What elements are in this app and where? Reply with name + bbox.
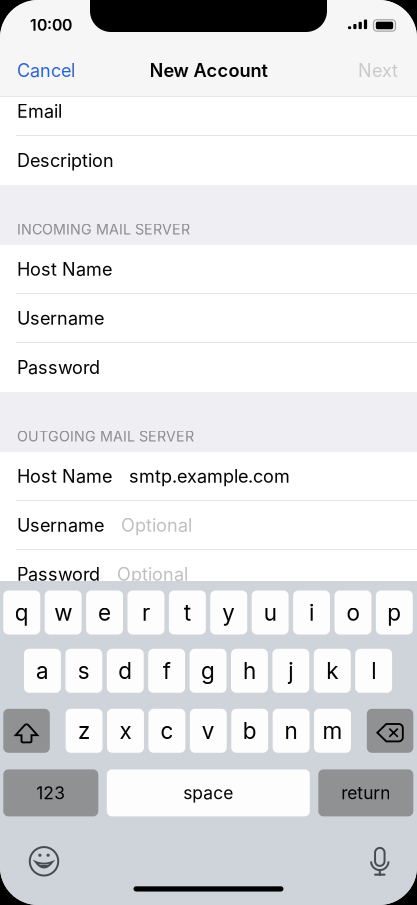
staticText: y bbox=[222, 599, 235, 626]
button[interactable]: l bbox=[355, 649, 392, 693]
button[interactable]: space bbox=[107, 769, 310, 816]
button[interactable]: Emoji keyboard bbox=[22, 839, 66, 883]
staticText: Username bbox=[17, 514, 104, 536]
button[interactable]: Host Name bbox=[0, 245, 417, 294]
button[interactable]: Username bbox=[0, 294, 417, 343]
staticText: 123 bbox=[36, 782, 65, 803]
button[interactable]: y bbox=[210, 590, 247, 634]
staticText: c bbox=[160, 717, 173, 744]
button[interactable]: t bbox=[169, 590, 206, 634]
staticText: Password bbox=[17, 563, 100, 585]
staticText: INCOMING MAIL SERVER bbox=[17, 221, 190, 238]
staticText: Cancel bbox=[17, 60, 75, 81]
staticText: a bbox=[36, 657, 49, 684]
button[interactable]: 123 bbox=[3, 769, 98, 816]
button[interactable]: Username bbox=[0, 501, 417, 550]
button[interactable]: Shift bbox=[3, 709, 50, 753]
button[interactable]: a bbox=[24, 649, 61, 693]
button[interactable]: f bbox=[148, 649, 185, 693]
button[interactable]: p bbox=[376, 590, 413, 634]
staticText: w bbox=[54, 599, 72, 626]
staticText: u bbox=[264, 599, 277, 626]
staticText: k bbox=[326, 657, 338, 684]
staticText: b bbox=[243, 717, 257, 744]
staticText: 10:00 bbox=[30, 15, 72, 34]
button[interactable]: m bbox=[314, 709, 351, 753]
staticText: New Account bbox=[149, 59, 267, 81]
staticText: Password bbox=[17, 357, 100, 378]
staticText: l bbox=[371, 657, 376, 684]
staticText: r bbox=[142, 599, 150, 626]
button[interactable]: q bbox=[3, 590, 40, 634]
staticText: Optional bbox=[117, 563, 188, 585]
button[interactable]: Host Name bbox=[0, 452, 417, 501]
button[interactable]: Email bbox=[0, 87, 417, 136]
staticText: g bbox=[201, 657, 215, 684]
staticText: h bbox=[243, 657, 256, 684]
staticText: q bbox=[15, 599, 29, 626]
staticText: OUTGOING MAIL SERVER bbox=[17, 428, 194, 445]
button[interactable]: r bbox=[127, 590, 164, 634]
staticText: Optional bbox=[121, 514, 192, 536]
button[interactable]: return bbox=[318, 769, 413, 816]
staticText: Host Name bbox=[17, 465, 112, 487]
button[interactable]: z bbox=[66, 709, 102, 753]
button[interactable]: Password bbox=[0, 343, 417, 392]
staticText: Username bbox=[17, 307, 104, 329]
staticText: o bbox=[346, 599, 359, 626]
staticText: j bbox=[288, 657, 293, 684]
staticText: Email bbox=[17, 100, 62, 122]
staticText: Next bbox=[358, 60, 398, 81]
button[interactable]: g bbox=[190, 649, 226, 693]
staticText: Description bbox=[17, 150, 114, 171]
staticText: n bbox=[285, 717, 298, 744]
button[interactable]: b bbox=[231, 709, 268, 753]
button[interactable]: x bbox=[107, 709, 144, 753]
staticText: i bbox=[309, 599, 314, 626]
button[interactable]: h bbox=[231, 649, 268, 693]
staticText: x bbox=[119, 717, 131, 744]
staticText: return bbox=[341, 782, 390, 803]
staticText: smtp.example.com bbox=[129, 465, 290, 487]
button[interactable]: v bbox=[190, 709, 227, 753]
button[interactable]: Dictation bbox=[358, 838, 402, 882]
staticText: t bbox=[184, 599, 191, 626]
staticText: p bbox=[387, 599, 401, 626]
staticText: d bbox=[118, 657, 132, 684]
button[interactable]: o bbox=[334, 590, 371, 634]
button[interactable]: c bbox=[148, 709, 185, 753]
button[interactable]: k bbox=[314, 649, 351, 693]
button[interactable]: n bbox=[273, 709, 309, 753]
staticText: m bbox=[322, 717, 342, 744]
staticText: Host Name bbox=[17, 258, 112, 280]
button[interactable]: w bbox=[45, 590, 82, 634]
staticText: z bbox=[78, 717, 90, 744]
staticText: f bbox=[163, 657, 171, 684]
button[interactable]: i bbox=[293, 590, 330, 634]
button[interactable]: Cancel bbox=[0, 44, 85, 97]
staticText: v bbox=[202, 717, 215, 744]
button[interactable]: Password bbox=[0, 550, 417, 599]
button[interactable]: Delete bbox=[367, 709, 413, 753]
button[interactable]: Description bbox=[0, 136, 417, 185]
staticText: s bbox=[78, 657, 90, 684]
button[interactable]: Next bbox=[348, 44, 417, 97]
button[interactable]: j bbox=[272, 649, 309, 693]
staticText: space bbox=[183, 782, 233, 803]
button[interactable]: d bbox=[107, 649, 144, 693]
button[interactable]: e bbox=[86, 590, 123, 634]
button[interactable]: u bbox=[252, 590, 289, 634]
button[interactable]: s bbox=[65, 649, 102, 693]
staticText: e bbox=[98, 599, 111, 626]
